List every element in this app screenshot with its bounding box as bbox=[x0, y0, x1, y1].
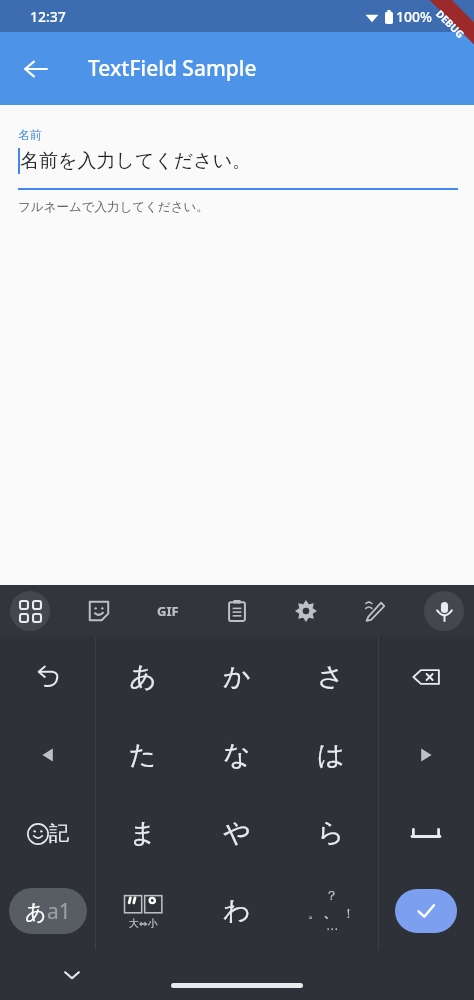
button[interactable]: さ bbox=[284, 637, 378, 716]
staticText: GIF bbox=[157, 602, 179, 620]
button[interactable]: Punctuation bbox=[284, 872, 378, 950]
button[interactable]: あ bbox=[95, 637, 190, 716]
button[interactable]: Cursor left bbox=[0, 716, 95, 794]
staticText: ま bbox=[129, 816, 157, 850]
button[interactable]: Input mode bbox=[0, 872, 95, 950]
staticText: フルネームで入力してください。 bbox=[18, 199, 209, 215]
button[interactable]: Hide keyboard bbox=[54, 957, 90, 993]
button[interactable]: Back bbox=[12, 45, 60, 93]
button[interactable]: Enter bbox=[378, 872, 474, 950]
button[interactable]: Undo bbox=[0, 637, 95, 716]
button[interactable]: ま bbox=[95, 794, 190, 872]
staticText: 、 bbox=[323, 903, 338, 922]
staticText: 12:37 bbox=[30, 7, 66, 26]
staticText: DEBUG bbox=[433, 7, 468, 41]
staticText: ！ bbox=[342, 905, 355, 921]
button[interactable]: Handwriting bbox=[355, 591, 395, 631]
staticText: 大⇔小 bbox=[129, 917, 158, 930]
staticText: ⋯ bbox=[326, 922, 338, 936]
button[interactable]: か bbox=[190, 637, 284, 716]
button[interactable]: GIF bbox=[148, 591, 188, 631]
staticText: な bbox=[223, 738, 251, 772]
staticText: a1 bbox=[47, 897, 71, 926]
staticText: は bbox=[317, 738, 345, 772]
staticText: あ bbox=[25, 899, 47, 925]
button[interactable]: Clipboard bbox=[217, 591, 257, 631]
staticText: さ bbox=[317, 660, 345, 694]
staticText: わ bbox=[223, 894, 251, 928]
button[interactable]: Stickers bbox=[79, 591, 119, 631]
staticText: あ bbox=[129, 660, 157, 694]
button[interactable]: わ bbox=[190, 872, 284, 950]
staticText: ？ bbox=[325, 887, 338, 903]
button[interactable]: た bbox=[95, 716, 190, 794]
button[interactable]: は bbox=[284, 716, 378, 794]
staticText: や bbox=[223, 816, 251, 850]
button[interactable]: Settings bbox=[286, 591, 326, 631]
button[interactable]: な bbox=[190, 716, 284, 794]
button[interactable]: Cursor right bbox=[378, 716, 474, 794]
staticText: た bbox=[129, 738, 157, 772]
staticText: 。 bbox=[308, 905, 321, 921]
staticText: TextField Sample bbox=[88, 54, 257, 83]
button[interactable]: や bbox=[190, 794, 284, 872]
staticText: 100% bbox=[396, 7, 432, 26]
button[interactable]: Apps bbox=[10, 591, 50, 631]
staticText: 名前 bbox=[18, 127, 42, 142]
staticText: 記 bbox=[49, 821, 69, 846]
button[interactable]: Voice input bbox=[424, 591, 464, 631]
button[interactable]: 名前を入力してください。 bbox=[18, 148, 458, 182]
button[interactable]: Dakuten and small kana bbox=[95, 872, 190, 950]
staticText: ら bbox=[317, 816, 345, 850]
staticText: か bbox=[223, 660, 251, 694]
staticText: 名前を入力してください。 bbox=[20, 149, 252, 173]
button[interactable]: Emoji and symbols bbox=[0, 794, 95, 872]
button[interactable]: ら bbox=[284, 794, 378, 872]
button[interactable]: Backspace bbox=[378, 637, 474, 716]
button[interactable]: Space bbox=[378, 794, 474, 872]
